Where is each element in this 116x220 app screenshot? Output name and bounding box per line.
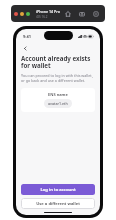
button[interactable]: ENS name (21, 88, 95, 112)
staticText: iPhone 14 Pro (36, 9, 61, 14)
button[interactable]: Back (20, 44, 30, 53)
button[interactable]: Use a different wallet (21, 198, 95, 209)
button[interactable]: Home (63, 9, 73, 19)
button[interactable]: Record (91, 9, 101, 19)
staticText: Account already exists for wallet (21, 54, 95, 70)
staticText: You can proceed to log in with this wall… (21, 73, 95, 83)
staticText: Log in to account (40, 187, 76, 193)
button[interactable]: Log in to account (21, 184, 95, 195)
staticText: avatar1.eth (48, 101, 68, 106)
staticText: Use a different wallet (36, 201, 80, 207)
staticText: iOS 16.2 (36, 15, 48, 19)
button[interactable]: Screenshot (77, 9, 87, 19)
staticText: 9:41 (23, 34, 31, 39)
staticText: ENS name (48, 92, 68, 97)
